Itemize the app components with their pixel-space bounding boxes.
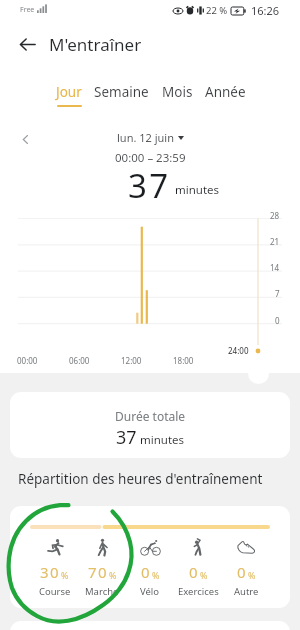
staticText: 22 %	[206, 4, 228, 17]
button[interactable]: Semaine	[94, 83, 149, 105]
staticText: Autre	[234, 585, 259, 598]
staticText: Jour	[56, 83, 82, 101]
staticText: 00:00	[17, 355, 38, 366]
staticText: %	[109, 569, 117, 581]
button[interactable]: 0	[174, 538, 222, 598]
staticText: Marche	[85, 585, 119, 598]
button[interactable]: 70	[78, 538, 126, 598]
staticText: Free	[20, 5, 35, 15]
staticText: Semaine	[94, 83, 149, 101]
button[interactable]: lun. 12 juin	[117, 130, 184, 145]
staticText: M'entraîner	[49, 33, 142, 56]
staticText: %	[61, 569, 69, 581]
staticText: Course	[39, 585, 71, 598]
staticText: Année	[205, 83, 246, 101]
staticText: Exercices	[178, 585, 219, 598]
staticText: 0	[141, 562, 151, 582]
staticText: 24:00	[228, 345, 249, 356]
staticText: Mois	[162, 83, 193, 101]
staticText: 14	[270, 262, 280, 273]
button[interactable]: 30	[31, 538, 78, 598]
staticText: 21	[270, 236, 280, 247]
staticText: %	[200, 569, 208, 581]
staticText: 7	[275, 288, 280, 299]
staticText: 0	[237, 562, 247, 582]
staticText: 0	[189, 562, 199, 582]
staticText: 18:00	[173, 355, 194, 366]
staticText: 0	[275, 315, 280, 326]
staticText: minutes	[140, 432, 185, 448]
staticText: 00:00 – 23:59	[115, 150, 186, 166]
button[interactable]: 0	[126, 538, 174, 598]
staticText: %	[248, 569, 256, 581]
staticText: 37	[116, 425, 137, 450]
button[interactable]: 0	[222, 538, 270, 598]
staticText: Durée totale	[115, 408, 186, 424]
button[interactable]: Previous day	[15, 129, 35, 149]
button[interactable]: Back	[13, 30, 41, 58]
staticText: 30	[40, 562, 60, 582]
staticText: Répartition des heures d'entraînement	[18, 470, 263, 488]
button[interactable]: Scroll indicator	[248, 363, 269, 384]
staticText: minutes	[175, 182, 220, 198]
staticText: 37	[128, 163, 171, 208]
staticText: Vélo	[140, 585, 160, 598]
staticText: 12:00	[121, 355, 142, 366]
button[interactable]: Mois	[162, 83, 193, 105]
staticText: 70	[88, 562, 108, 582]
staticText: %	[152, 569, 160, 581]
button[interactable]: Année	[205, 83, 246, 105]
staticText: 06:00	[69, 355, 90, 366]
button[interactable]: Durée totale	[10, 392, 290, 458]
button[interactable]: Jour	[56, 83, 82, 107]
staticText: 28	[270, 210, 280, 221]
staticText: 16:26	[251, 3, 280, 18]
staticText: lun. 12 juin	[117, 130, 174, 145]
